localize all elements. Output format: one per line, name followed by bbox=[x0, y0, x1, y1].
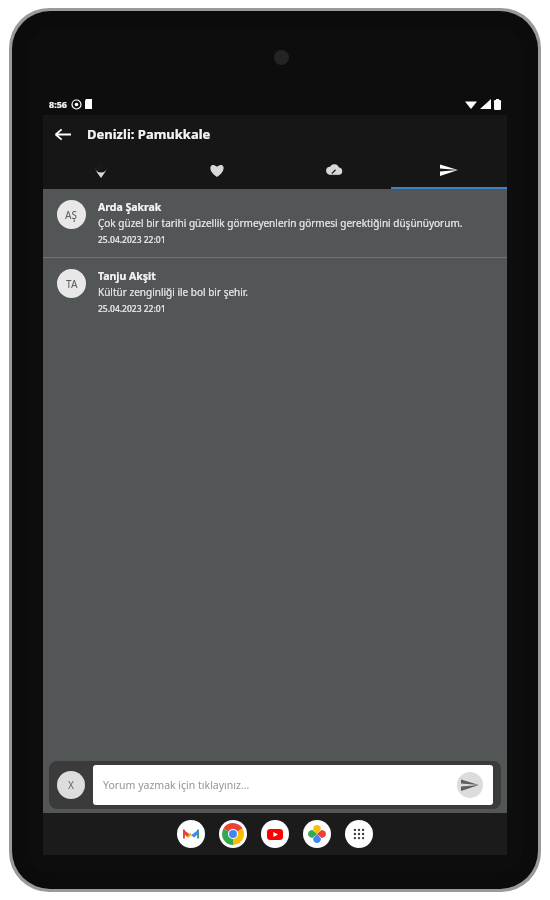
staticText: Tanju Akşit bbox=[98, 269, 156, 283]
staticText: Denizli: Pamukkale bbox=[87, 125, 211, 143]
staticText: TA bbox=[66, 277, 78, 291]
button[interactable]: X bbox=[57, 771, 85, 799]
button[interactable]: Comments bbox=[391, 153, 507, 187]
button[interactable]: All apps bbox=[345, 820, 373, 848]
button[interactable]: Send bbox=[457, 772, 483, 798]
button[interactable]: Photos bbox=[303, 820, 331, 848]
staticText: Kültür zenginliği ile bol bir şehir. bbox=[98, 285, 249, 299]
button[interactable]: Location bbox=[43, 153, 159, 187]
button[interactable]: TA bbox=[43, 258, 507, 326]
staticText: 25.04.2023 22:01 bbox=[98, 303, 166, 315]
button[interactable]: YouTube bbox=[261, 820, 289, 848]
button[interactable]: Favorites bbox=[159, 153, 275, 187]
staticText: AŞ bbox=[65, 208, 78, 222]
button[interactable]: Yorum yazmak için tıklayınız... bbox=[93, 765, 493, 805]
staticText: Yorum yazmak için tıklayınız... bbox=[103, 778, 250, 792]
staticText: 25.04.2023 22:01 bbox=[98, 234, 166, 246]
button[interactable]: Chrome bbox=[219, 820, 247, 848]
button[interactable]: Weather bbox=[275, 153, 391, 187]
button[interactable]: Gmail bbox=[177, 820, 205, 848]
staticText: Arda Şakrak bbox=[98, 200, 162, 214]
staticText: Çok güzel bir tarihi güzellik görmeyenle… bbox=[98, 216, 463, 230]
staticText: X bbox=[68, 778, 74, 792]
staticText: 8:56 bbox=[49, 98, 67, 110]
button[interactable]: AŞ bbox=[43, 189, 507, 257]
button[interactable]: Back bbox=[43, 115, 81, 153]
